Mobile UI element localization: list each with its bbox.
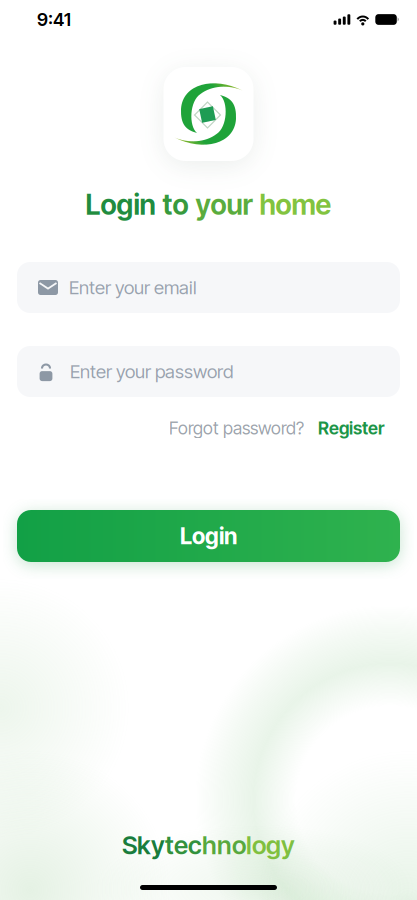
staticText: Forgot password?: [169, 417, 304, 439]
staticText: Sky: [122, 830, 165, 860]
staticText: your: [195, 188, 252, 221]
staticText: Login: [180, 522, 237, 550]
staticText: Enter your email: [69, 276, 197, 299]
staticText: Enter your password: [70, 360, 233, 383]
staticText: Login: [85, 188, 155, 221]
button[interactable]: Enter your password: [0, 346, 417, 397]
staticText: 9:41: [37, 9, 71, 30]
button[interactable]: Register: [318, 417, 384, 439]
button[interactable]: Login: [17, 510, 400, 562]
staticText: Register: [318, 417, 384, 439]
staticText: hno: [202, 830, 246, 860]
staticText: tec: [165, 830, 202, 860]
staticText: home: [259, 188, 331, 221]
button[interactable]: Enter your email: [0, 262, 417, 313]
staticText: to: [162, 188, 188, 221]
button[interactable]: Forgot password?: [169, 417, 304, 439]
staticText: logy: [246, 830, 295, 860]
